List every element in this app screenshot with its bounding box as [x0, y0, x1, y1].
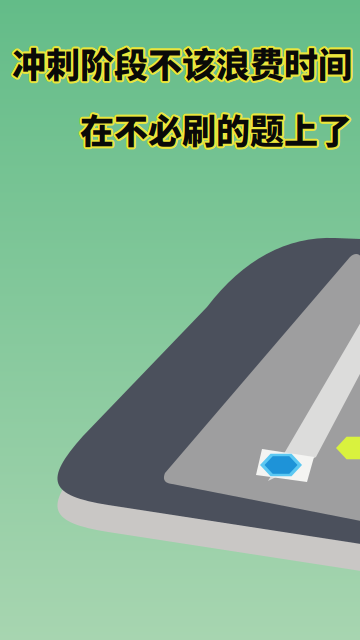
staticText: 在不必刷的题上了	[81, 106, 353, 155]
staticText: 冲刺阶段不该浪费时间	[11, 36, 351, 85]
staticText: 在不必刷的题上了	[80, 106, 352, 155]
staticText: 在不必刷的题上了	[78, 105, 350, 154]
staticText: 在不必刷的题上了	[81, 102, 353, 152]
staticText: 冲刺阶段不该浪费时间	[10, 39, 350, 88]
staticText: 冲刺阶段不该浪费时间	[12, 38, 352, 87]
staticText: 在不必刷的题上了	[79, 102, 351, 152]
staticText: 冲刺阶段不该浪费时间	[12, 36, 352, 85]
staticText: 在不必刷的题上了	[82, 104, 354, 153]
staticText: 在不必刷的题上了	[79, 106, 351, 155]
staticText: 在不必刷的题上了	[80, 102, 352, 151]
staticText: 冲刺阶段不该浪费时间	[10, 38, 350, 87]
staticText: 冲刺阶段不该浪费时间	[13, 36, 353, 85]
staticText: 冲刺阶段不该浪费时间	[12, 40, 352, 89]
staticText: 在不必刷的题上了	[78, 104, 350, 153]
staticText: 在不必刷的题上了	[82, 105, 354, 154]
staticText: 在不必刷的题上了	[80, 104, 352, 153]
staticText: 冲刺阶段不该浪费时间	[14, 38, 354, 87]
staticText: 在不必刷的题上了	[78, 103, 350, 152]
staticText: 冲刺阶段不该浪费时间	[11, 40, 351, 89]
staticText: 冲刺阶段不该浪费时间	[10, 37, 350, 86]
staticText: 冲刺阶段不该浪费时间	[14, 39, 354, 88]
staticText: 冲刺阶段不该浪费时间	[13, 40, 353, 89]
staticText: 冲刺阶段不该浪费时间	[14, 37, 354, 86]
staticText: 在不必刷的题上了	[82, 103, 354, 152]
